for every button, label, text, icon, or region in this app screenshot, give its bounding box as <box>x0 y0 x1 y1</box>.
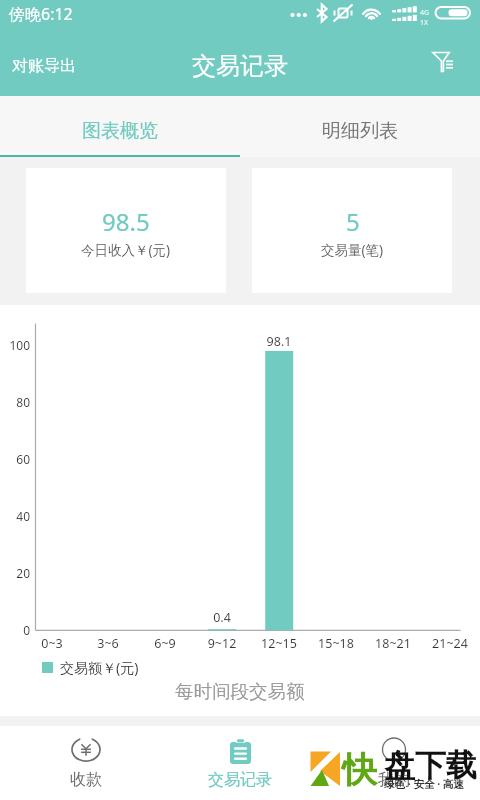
staticText: 0~3 <box>22 635 82 652</box>
button[interactable]: 明细列表 <box>240 96 480 157</box>
staticText: 0 <box>0 622 30 638</box>
staticText: 12~15 <box>249 635 309 652</box>
staticText: 98.1 <box>251 333 307 350</box>
staticText: 4G <box>420 8 430 18</box>
staticText: 今日收入￥(元) <box>81 241 171 259</box>
staticText: 盘下载 <box>384 746 477 785</box>
staticText: 每时间段交易额 <box>175 680 305 703</box>
staticText: 交易量(笔) <box>321 241 384 259</box>
button[interactable]: 我的 <box>317 726 471 800</box>
staticText: 40 <box>0 508 30 524</box>
staticText: 明细列表 <box>322 119 398 143</box>
button[interactable]: 5 <box>252 168 452 293</box>
staticText: 图表概览 <box>82 119 158 143</box>
staticText: 交易记录 <box>192 51 288 81</box>
staticText: 1X <box>420 18 429 28</box>
staticText: 交易记录 <box>208 770 272 790</box>
staticText: 绿色 · 安全 · 高速 <box>384 777 464 791</box>
staticText: 快 <box>342 748 377 792</box>
button[interactable]: 图表概览 <box>0 96 240 157</box>
button[interactable]: 对账导出 <box>0 42 88 90</box>
staticText: 98.5 <box>102 205 150 238</box>
staticText: 6~9 <box>135 635 195 652</box>
staticText: 交易额￥(元) <box>60 658 139 677</box>
staticText: 9~12 <box>192 635 252 652</box>
staticText: 傍晚6:12 <box>9 3 73 25</box>
button[interactable]: 收款 <box>9 726 163 800</box>
button[interactable]: 98.5 <box>26 168 226 293</box>
staticText: 对账导出 <box>12 56 76 76</box>
staticText: 20 <box>0 565 30 581</box>
staticText: 15~18 <box>306 635 366 652</box>
staticText: 收款 <box>70 770 102 790</box>
staticText: 21~24 <box>420 635 480 652</box>
button[interactable]: 交易记录 <box>163 726 317 800</box>
staticText: 18~21 <box>363 635 423 652</box>
staticText: 5 <box>346 205 360 238</box>
staticText: 60 <box>0 451 30 467</box>
staticText: 80 <box>0 394 30 410</box>
staticText: 100 <box>0 337 30 353</box>
staticText: 我的 <box>378 770 410 790</box>
staticText: 3~6 <box>78 635 138 652</box>
staticText: 0.4 <box>194 609 250 626</box>
button[interactable]: Filter <box>416 45 480 88</box>
